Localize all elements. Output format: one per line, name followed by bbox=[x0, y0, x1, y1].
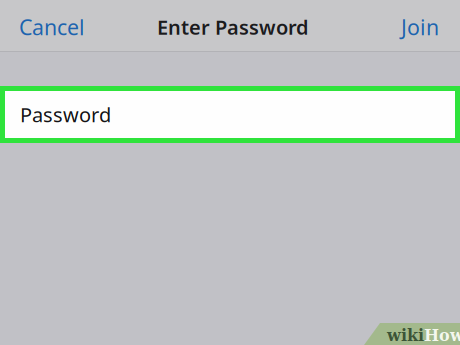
staticText: How bbox=[424, 326, 460, 345]
button[interactable]: Password bbox=[0, 86, 460, 143]
staticText: wiki bbox=[387, 326, 424, 345]
staticText: Join bbox=[401, 13, 439, 41]
button[interactable]: Cancel bbox=[0, 5, 103, 49]
staticText: Enter Password bbox=[157, 14, 309, 40]
staticText: Cancel bbox=[19, 13, 85, 41]
staticText: Password bbox=[20, 101, 111, 128]
button[interactable]: Join bbox=[379, 5, 460, 49]
